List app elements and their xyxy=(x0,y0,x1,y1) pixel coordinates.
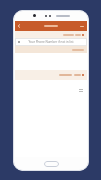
button[interactable]: More xyxy=(78,23,85,30)
button[interactable] xyxy=(44,25,58,27)
button[interactable]: Back xyxy=(15,22,23,30)
button[interactable] xyxy=(15,70,87,80)
button[interactable]: Your Phone Number if not in list xyxy=(15,38,87,46)
button[interactable]: Home xyxy=(44,161,59,167)
button[interactable] xyxy=(15,31,87,38)
button[interactable] xyxy=(15,46,87,53)
staticText: Your Phone Number if not in list xyxy=(28,40,74,44)
button[interactable]: Options xyxy=(79,89,83,92)
